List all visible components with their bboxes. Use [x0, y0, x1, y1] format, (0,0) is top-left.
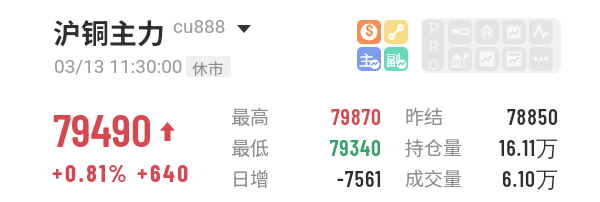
button[interactable]: Switch contract [237, 25, 251, 33]
button[interactable]: main indicator [357, 20, 381, 44]
staticText: R [429, 38, 439, 56]
button[interactable]: 沪铜主力 [53, 12, 166, 53]
button[interactable]: funds [475, 20, 499, 44]
staticText: P [429, 20, 439, 38]
staticText: $ [365, 22, 374, 40]
staticText: 最高 [231, 102, 270, 130]
staticText: 沪铜主力 [53, 12, 166, 53]
staticText: O [428, 56, 439, 71]
button[interactable]: report [502, 20, 526, 44]
staticText: 休市 [192, 56, 225, 77]
staticText: 79340 [286, 134, 382, 160]
staticText: 副 [386, 49, 402, 71]
staticText: -7561 [286, 165, 382, 191]
button[interactable]: board [502, 47, 526, 71]
staticText: +0.81% [52, 158, 130, 187]
button[interactable]: pulse [529, 20, 553, 44]
staticText: +640 [137, 158, 191, 187]
staticText: 主 [359, 49, 375, 71]
staticText: 79490 [53, 101, 152, 156]
button[interactable]: sub chart [384, 47, 408, 71]
staticText: 79870 [286, 103, 382, 129]
button[interactable]: trend [475, 47, 499, 71]
staticText: 6.10万 [460, 165, 559, 194]
staticText: cu888 [173, 15, 226, 37]
staticText: 最低 [231, 133, 270, 161]
staticText: 03/13 11:30:00 [54, 55, 183, 77]
staticText: 昨结 [405, 102, 444, 130]
staticText: 持仓量 [405, 133, 463, 161]
staticText: 成交量 [405, 164, 463, 192]
button[interactable]: more [529, 47, 553, 71]
button[interactable]: PRO [422, 20, 444, 71]
button[interactable]: wide bar [448, 20, 472, 44]
staticText: 日增 [231, 164, 270, 192]
button[interactable]: drawing tools [384, 20, 408, 44]
staticText: 16.11万 [460, 134, 559, 163]
button[interactable]: bars [448, 47, 472, 71]
staticText: 78850 [460, 103, 559, 129]
button[interactable]: main chart [357, 47, 381, 71]
